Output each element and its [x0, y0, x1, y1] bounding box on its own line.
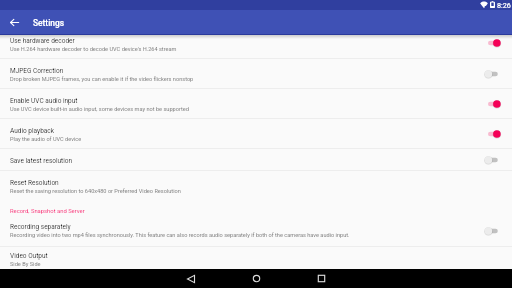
staticText: Drop broken MJPEG frames, you can enable…	[10, 76, 194, 83]
staticText: Save latest resolution	[10, 157, 73, 165]
button[interactable]: Audio playback	[0, 119, 512, 148]
staticText: Enable UVC audio input	[10, 97, 78, 105]
button[interactable]: Video Output	[0, 247, 512, 262]
button[interactable]: Recent apps	[299, 269, 343, 288]
staticText: Video Output	[10, 252, 48, 260]
button[interactable]: Save latest resolution	[479, 149, 512, 170]
button[interactable]: Recording separately	[479, 215, 512, 246]
button[interactable]: Back	[169, 269, 213, 288]
button[interactable]: MJPEG Correction	[479, 59, 512, 88]
staticText: Record, Snapshot and Server	[10, 208, 85, 215]
button[interactable]: Save latest resolution	[0, 149, 512, 170]
button[interactable]: Audio playback	[479, 119, 512, 148]
staticText: Side By Side	[10, 261, 41, 267]
staticText: Play the audio of UVC device	[10, 136, 82, 143]
staticText: Reset the saving resolution to 640x480 o…	[10, 188, 181, 195]
staticText: Use hardware decoder	[10, 37, 75, 45]
button[interactable]: Navigate up	[0, 10, 28, 35]
button[interactable]: Home	[234, 269, 278, 288]
staticText: Recording separately	[10, 223, 71, 231]
button[interactable]: Recording separately	[0, 215, 512, 246]
staticText: MJPEG Correction	[10, 67, 64, 75]
button[interactable]: Use hardware decoder	[0, 35, 512, 58]
staticText: 8:26	[497, 1, 511, 9]
staticText: Use UVC device built-in audio input, som…	[10, 106, 189, 113]
button[interactable]: Enable UVC audio input	[0, 89, 512, 118]
staticText: Reset Resolution	[10, 179, 59, 187]
staticText: Use H.264 hardware decoder to decode UVC…	[10, 46, 177, 53]
staticText: Audio playback	[10, 127, 55, 135]
staticText: Settings	[33, 18, 65, 28]
button[interactable]: Reset Resolution	[0, 171, 512, 193]
staticText: Recording video into two mp4 files synch…	[10, 232, 350, 239]
button[interactable]: MJPEG Correction	[0, 59, 512, 88]
button[interactable]: Record, Snapshot and Server	[0, 193, 512, 215]
button[interactable]: Use hardware decoder	[479, 35, 512, 58]
button[interactable]: Enable UVC audio input	[479, 89, 512, 118]
